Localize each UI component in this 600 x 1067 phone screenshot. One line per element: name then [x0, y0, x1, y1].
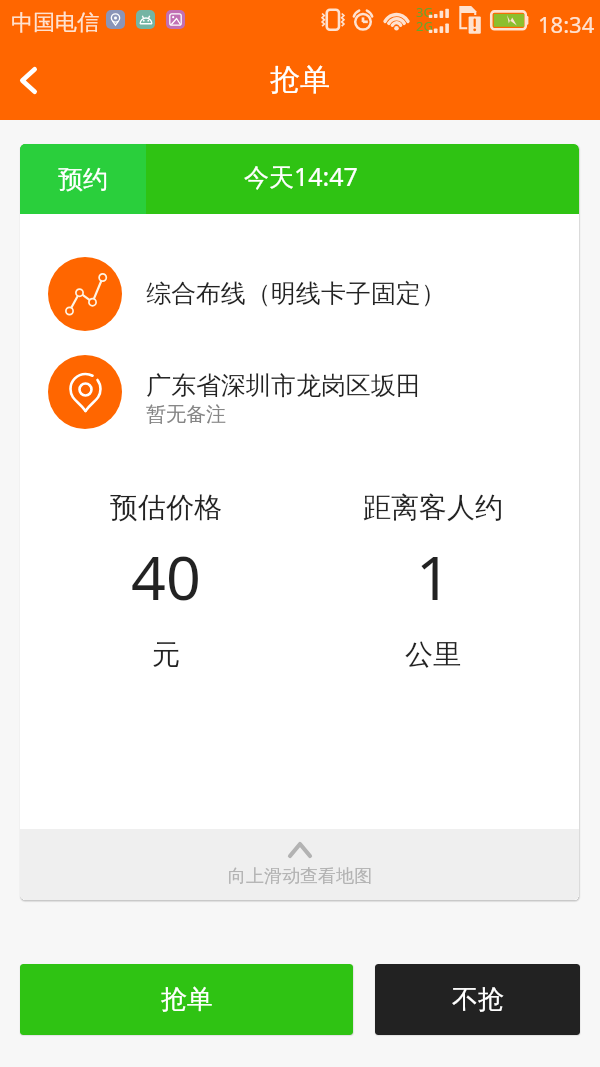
button[interactable]: Back [0, 40, 60, 120]
staticText: 18:34 [538, 9, 595, 39]
staticText: 综合布线（明线卡子固定） [146, 278, 446, 309]
staticText: 广东省深圳市龙岗区坂田 [146, 370, 421, 401]
staticText: 3G [416, 3, 433, 21]
staticText: 向上滑动查看地图 [228, 865, 372, 888]
staticText: 中国电信 [11, 9, 99, 37]
staticText: 公里 [405, 637, 461, 672]
staticText: 预约 [58, 164, 108, 195]
staticText: 2G [416, 17, 433, 35]
staticText: 距离客人约 [363, 490, 503, 525]
staticText: 元 [152, 637, 180, 672]
staticText: 40 [131, 535, 201, 618]
staticText: 抢单 [270, 61, 330, 99]
staticText: 抢单 [161, 983, 213, 1016]
button[interactable]: 抢单 [20, 964, 353, 1035]
button[interactable]: 向上滑动查看地图 [20, 829, 579, 900]
button[interactable]: 综合布线（明线卡子固定） [20, 245, 579, 342]
button[interactable]: 广东省深圳市龙岗区坂田 [20, 342, 579, 442]
staticText: 预估价格 [110, 490, 222, 525]
staticText: 今天14:47 [244, 159, 358, 193]
staticText: 1 [416, 535, 451, 618]
button[interactable]: 预约 [20, 144, 146, 214]
button[interactable]: 今天14:47 [146, 144, 579, 214]
staticText: 暂无备注 [146, 402, 226, 427]
staticText: 不抢 [452, 983, 504, 1016]
button[interactable]: 不抢 [375, 964, 580, 1035]
